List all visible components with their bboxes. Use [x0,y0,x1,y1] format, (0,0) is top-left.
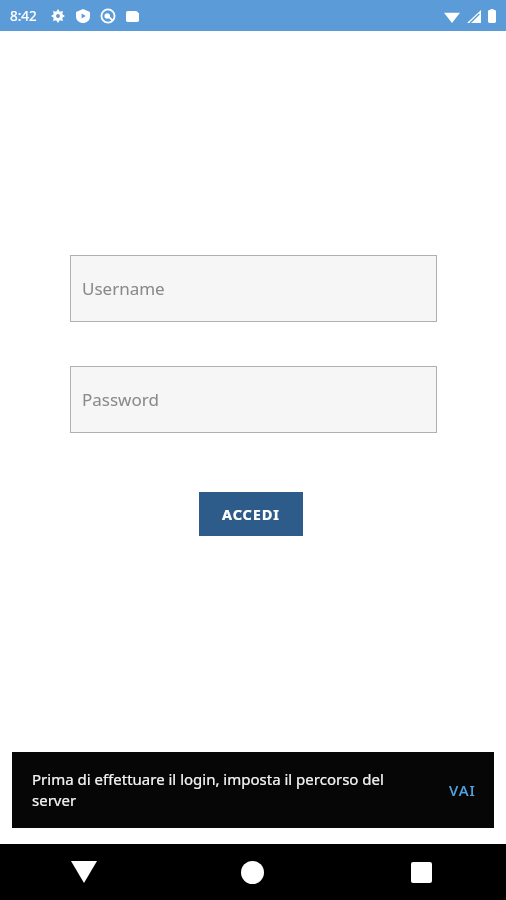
staticText: 8:42 [10,7,37,25]
button[interactable]: Password [70,366,437,433]
button[interactable]: Recent apps [337,844,506,900]
button[interactable]: Home [168,844,337,900]
button[interactable]: Back [0,844,168,900]
staticText: Password [82,388,159,411]
staticText: VAI [449,780,476,800]
button[interactable]: ACCEDI [199,492,303,536]
staticText: Prima di effettuare il login, imposta il… [32,769,423,811]
staticText: Username [82,277,165,300]
staticText: ACCEDI [222,504,280,524]
button[interactable]: Username [70,255,437,322]
button[interactable]: VAI [431,752,494,828]
